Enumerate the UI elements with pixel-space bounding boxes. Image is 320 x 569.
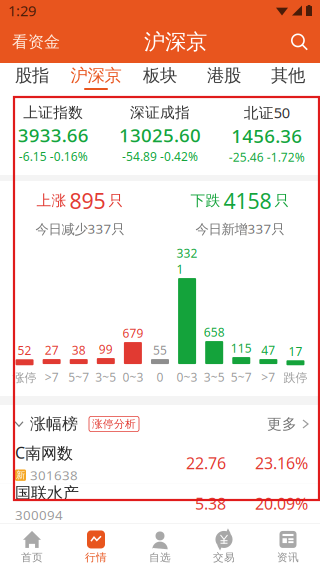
button[interactable]: 股指 xyxy=(0,63,64,93)
staticText: 板块 xyxy=(143,65,177,86)
staticText: 1456.36 xyxy=(231,123,302,148)
staticText: 1:29 xyxy=(8,1,36,20)
staticText: 5~7 xyxy=(68,369,89,385)
button[interactable]: 港股 xyxy=(192,63,256,93)
staticText: 0~3 xyxy=(177,369,198,385)
button[interactable]: 其他 xyxy=(256,63,320,93)
staticText: 301638 xyxy=(30,466,78,484)
staticText: 交易 xyxy=(213,551,235,564)
staticText: 99 xyxy=(99,341,113,357)
button[interactable]: C南网数 xyxy=(0,443,320,483)
staticText: 股指 xyxy=(15,65,49,86)
staticText: 679 xyxy=(122,325,143,341)
staticText: 27 xyxy=(45,342,59,358)
staticText: 看资金 xyxy=(12,32,60,52)
staticText: 上证指数 xyxy=(23,104,83,122)
staticText: 下跌 xyxy=(190,192,220,210)
staticText: 5.38 xyxy=(195,493,226,514)
staticText: 深证成指 xyxy=(130,104,190,122)
staticText: 47 xyxy=(261,342,275,358)
button[interactable]: 沪深京 xyxy=(64,63,128,93)
staticText: 115 xyxy=(231,340,252,356)
staticText: 首页 xyxy=(21,551,43,564)
staticText: 资讯 xyxy=(277,551,299,564)
staticText: 38 xyxy=(72,342,86,358)
staticText: 3321 xyxy=(177,245,198,277)
staticText: 13025.60 xyxy=(119,123,201,147)
button[interactable]: Search xyxy=(285,27,314,56)
staticText: 0~3 xyxy=(122,369,143,385)
staticText: 自选 xyxy=(149,551,171,564)
staticText: 上涨 xyxy=(36,192,66,210)
staticText: 跌停 xyxy=(283,370,307,385)
staticText: 4158 xyxy=(223,186,271,215)
staticText: 涨幅榜 xyxy=(30,414,78,434)
staticText: 今日减少337只 xyxy=(35,220,124,237)
staticText: 更多 xyxy=(267,415,297,433)
staticText: 300094 xyxy=(15,506,63,524)
staticText: -54.89 -0.42% xyxy=(122,148,198,164)
staticText: 658 xyxy=(204,324,225,340)
button[interactable]: 涨幅榜 xyxy=(0,405,320,443)
button[interactable]: 行情 xyxy=(64,524,128,569)
staticText: 3~5 xyxy=(95,369,116,385)
staticText: 只 xyxy=(108,192,123,210)
staticText: 北证50 xyxy=(244,103,290,122)
button[interactable]: 交易 xyxy=(192,524,256,569)
staticText: 国联水产 xyxy=(15,483,79,503)
staticText: 55 xyxy=(153,342,167,358)
staticText: 港股 xyxy=(207,65,241,86)
staticText: 0 xyxy=(156,369,163,385)
staticText: 今日新增337只 xyxy=(195,220,284,237)
staticText: 3933.66 xyxy=(18,123,89,147)
button[interactable]: 首页 xyxy=(0,524,64,569)
staticText: 895 xyxy=(69,186,105,215)
staticText: 5~7 xyxy=(231,369,252,385)
staticText: 行情 xyxy=(85,551,107,564)
staticText: 新 xyxy=(16,469,25,481)
staticText: 17 xyxy=(288,343,302,359)
staticText: 沪深京 xyxy=(70,65,121,86)
button[interactable]: 国联水产 xyxy=(0,483,320,523)
staticText: 3~5 xyxy=(204,369,225,385)
staticText: 20.09% xyxy=(255,493,308,514)
staticText: 沪深京 xyxy=(144,29,207,55)
staticText: 23.16% xyxy=(255,452,308,474)
staticText: 其他 xyxy=(271,65,305,86)
staticText: 22.76 xyxy=(186,452,226,474)
staticText: 只 xyxy=(274,192,289,210)
staticText: C南网数 xyxy=(15,442,73,463)
button[interactable]: 看资金 xyxy=(6,26,66,58)
staticText: >7 xyxy=(261,369,275,385)
staticText: >7 xyxy=(45,369,59,385)
button[interactable]: 自选 xyxy=(128,524,192,569)
staticText: 52 xyxy=(17,342,31,358)
button[interactable]: 板块 xyxy=(128,63,192,93)
staticText: -25.46 -1.72% xyxy=(229,149,305,165)
button[interactable]: 资讯 xyxy=(256,524,320,569)
staticText: 涨停分析 xyxy=(92,417,136,430)
staticText: -6.15 -0.16% xyxy=(19,148,88,164)
staticText: 涨停 xyxy=(12,370,36,385)
